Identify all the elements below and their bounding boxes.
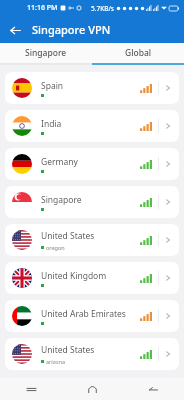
button[interactable]: Germany [5,148,179,180]
staticText: United Kingdom [41,270,107,282]
button[interactable]: India [5,110,179,142]
button[interactable]: Back [4,19,26,41]
button[interactable]: Global [92,43,184,63]
button[interactable]: Back [123,378,184,400]
staticText: Germany [41,156,78,168]
staticText: Spain [41,80,64,92]
staticText: Singapore [25,47,67,59]
button[interactable]: Spain [5,72,179,104]
staticText: United States [41,344,95,356]
button[interactable]: United Kingdom [5,262,179,294]
button[interactable]: Home [62,378,123,400]
button[interactable]: Singapore [0,43,92,63]
button[interactable]: United States [5,224,179,256]
staticText: arizona [46,358,66,365]
staticText: 11:16 PM [27,3,58,13]
staticText: Singapore VPN [32,22,111,37]
staticText: Global [125,47,152,59]
button[interactable]: United Arab Emirates [5,300,179,332]
button[interactable]: Singapore [5,186,179,218]
button[interactable]: United States [5,338,179,370]
staticText: 5.7KB/s [91,4,114,13]
staticText: India [41,118,62,130]
staticText: United Arab Emirates [41,308,126,320]
staticText: Singapore [41,194,82,206]
staticText: oregon [46,244,65,251]
staticText: United States [41,230,95,242]
button[interactable]: Recents [0,378,62,400]
